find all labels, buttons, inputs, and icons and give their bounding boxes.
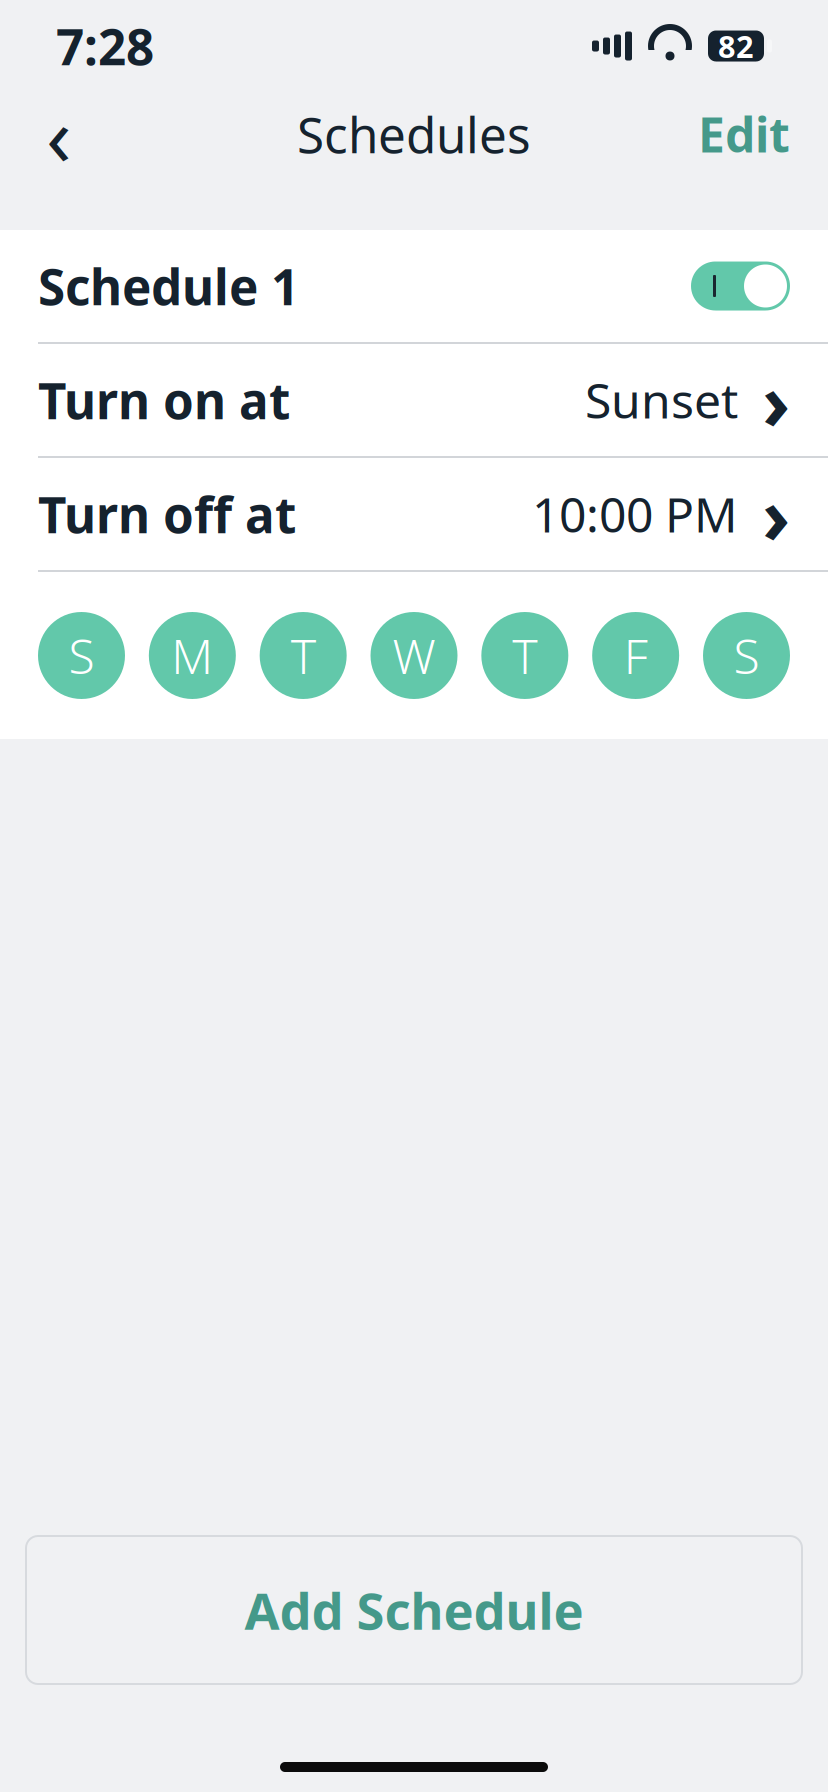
staticText: M bbox=[171, 624, 213, 687]
staticText: › bbox=[762, 349, 790, 451]
button[interactable]: Thursday bbox=[481, 612, 568, 699]
staticText: Sunset bbox=[585, 368, 738, 432]
button[interactable]: Friday bbox=[592, 612, 679, 699]
button[interactable]: Tuesday bbox=[260, 612, 347, 699]
staticText: 82 bbox=[718, 26, 754, 66]
button[interactable]: Saturday bbox=[703, 612, 790, 699]
staticText: Turn off at bbox=[38, 481, 296, 547]
button[interactable]: Monday bbox=[149, 612, 236, 699]
button[interactable]: Turn on at bbox=[0, 344, 828, 456]
staticText: Schedules bbox=[297, 101, 531, 167]
staticText: Turn on at bbox=[38, 367, 290, 433]
button[interactable]: Add Schedule bbox=[26, 1536, 802, 1684]
staticText: F bbox=[624, 624, 648, 687]
staticText: S bbox=[733, 624, 759, 687]
button[interactable]: Turn off at bbox=[0, 458, 828, 570]
button[interactable]: Wednesday bbox=[370, 612, 457, 699]
staticText: › bbox=[762, 463, 790, 565]
staticText: Add Schedule bbox=[244, 1576, 583, 1644]
button[interactable]: Back bbox=[24, 96, 94, 172]
button[interactable]: Edit bbox=[684, 96, 804, 172]
staticText: Edit bbox=[698, 102, 790, 166]
button[interactable]: Sunday bbox=[38, 612, 125, 699]
staticText: T bbox=[291, 624, 316, 687]
staticText: ‹ bbox=[46, 79, 72, 189]
staticText: W bbox=[392, 624, 435, 687]
staticText: Schedule 1 bbox=[38, 253, 299, 319]
button[interactable]: Schedule 1 on bbox=[691, 261, 790, 310]
staticText: T bbox=[512, 624, 537, 687]
staticText: S bbox=[68, 624, 94, 687]
staticText: 7:28 bbox=[56, 13, 154, 79]
staticText: 10:00 PM bbox=[532, 482, 738, 546]
